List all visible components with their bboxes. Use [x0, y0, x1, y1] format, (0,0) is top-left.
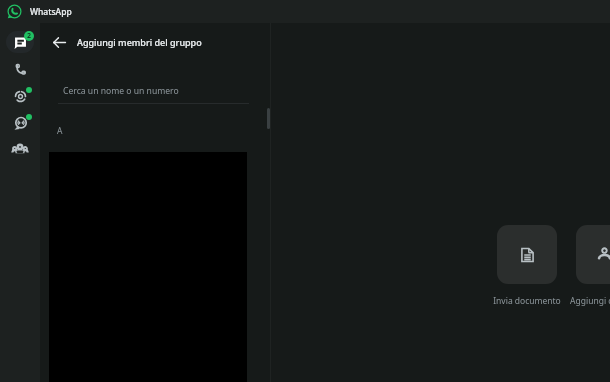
staticText: 2 — [27, 31, 32, 41]
staticText: Cerca un nome o un numero — [63, 85, 179, 97]
staticText: Invia documento — [493, 295, 561, 307]
staticText: A — [57, 125, 63, 137]
button[interactable]: Channels — [0, 109, 40, 136]
staticText: Aggiungi membri del gruppo — [77, 36, 202, 48]
button[interactable]: Chats — [0, 28, 40, 55]
button[interactable] — [576, 225, 610, 284]
button[interactable]: Communities — [0, 136, 40, 163]
staticText: WhatsApp — [30, 6, 72, 18]
button[interactable]: Back — [50, 33, 68, 51]
button[interactable]: Calls — [0, 55, 40, 82]
button[interactable] — [497, 225, 557, 284]
button[interactable]: Status — [0, 82, 40, 109]
staticText: Aggiungi contatto — [570, 295, 610, 307]
